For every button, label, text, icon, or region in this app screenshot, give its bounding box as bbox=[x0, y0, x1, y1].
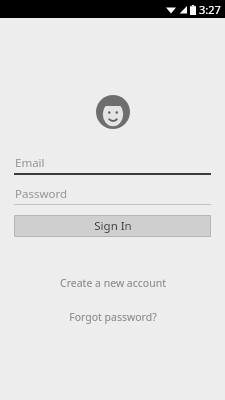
staticText: 3:27 bbox=[199, 2, 221, 17]
staticText: Sign In bbox=[94, 218, 132, 234]
staticText: Forgot password? bbox=[69, 310, 157, 324]
staticText: Email bbox=[15, 155, 45, 171]
button[interactable]: Sign In bbox=[14, 215, 211, 237]
staticText: Password bbox=[15, 186, 68, 202]
button[interactable]: Password bbox=[14, 185, 211, 205]
button[interactable]: Forgot password? bbox=[0, 309, 225, 325]
staticText: Create a new account bbox=[60, 276, 166, 290]
button[interactable]: Email bbox=[14, 154, 211, 175]
button[interactable]: Create a new account bbox=[0, 275, 225, 291]
